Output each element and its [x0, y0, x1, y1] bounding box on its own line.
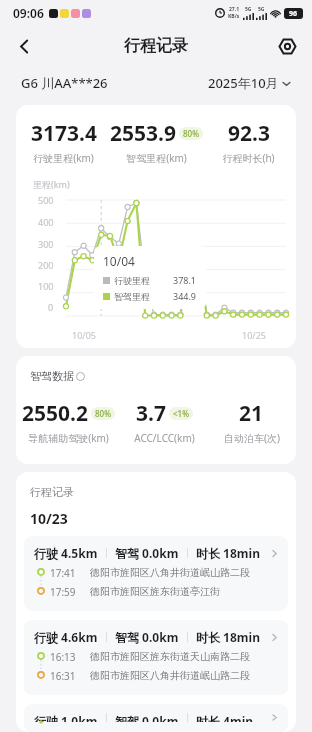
staticText: 16:13 [50, 650, 82, 664]
staticText: 行驶 1.0km [34, 713, 98, 722]
button[interactable]: Back [7, 29, 41, 63]
staticText: 智驾数据 [30, 369, 74, 383]
button[interactable]: 2025年10月 [208, 74, 291, 92]
staticText: 2550.2 [22, 399, 88, 428]
staticText: 智驾 0.0km [115, 545, 179, 561]
staticText: 80% [183, 128, 199, 139]
staticText: 3.7 [136, 399, 166, 428]
staticText: 378.1 [173, 274, 197, 286]
staticText: KB/s [228, 13, 240, 20]
staticText: 行驶里程(km) [33, 151, 94, 165]
button[interactable]: 行驶 4.5km [24, 536, 288, 611]
staticText: 10/23 [30, 509, 68, 528]
staticText: 92.3 [228, 119, 270, 148]
button[interactable]: G6 川AA***26 [21, 74, 108, 92]
staticText: 27.1 [229, 6, 239, 13]
staticText: 德阳市旌阳区八角井街道岷山路二段 [90, 566, 250, 579]
button[interactable]: 行驶 4.6km [24, 620, 288, 695]
staticText: 时长 18min [196, 629, 260, 645]
staticText: 行驶 4.5km [34, 545, 98, 561]
staticText: 行驶 4.6km [34, 629, 98, 645]
staticText: 行驶里程 [114, 275, 150, 286]
staticText: <1% [173, 408, 189, 419]
staticText: 2025年10月 [208, 74, 279, 92]
staticText: 德阳市旌阳区旌东街道亭江街 [90, 585, 220, 598]
staticText: 10/04 [103, 253, 135, 269]
staticText: 344.9 [173, 290, 197, 302]
staticText: 智驾里程(km) [126, 151, 187, 165]
staticText: 500 [38, 194, 54, 206]
staticText: 智驾里程 [114, 291, 150, 302]
staticText: 自动泊车(次) [224, 431, 280, 445]
staticText: 智驾 0.0km [115, 713, 179, 722]
staticText: 5G [245, 6, 252, 13]
staticText: 行程时长(h) [222, 151, 275, 165]
staticText: 16:31 [50, 669, 82, 683]
staticText: ACC/LCC(km) [134, 431, 195, 445]
staticText: 100 [38, 280, 54, 292]
staticText: 智驾 0.0km [115, 629, 179, 645]
button[interactable]: 行驶 1.0km [24, 704, 288, 732]
staticText: 10/25 [242, 329, 266, 341]
staticText: 96 [289, 9, 298, 19]
staticText: 2553.9 [110, 119, 176, 148]
staticText: 80% [95, 408, 111, 419]
staticText: 300 [38, 238, 54, 250]
staticText: 400 [38, 216, 54, 228]
button[interactable]: 智驾数据 [30, 369, 85, 383]
staticText: 德阳市旌阳区八角井街道岷山路二段 [90, 669, 250, 682]
staticText: 10/05 [72, 329, 96, 341]
staticText: 09:06 [13, 5, 44, 21]
staticText: 时长 18min [196, 545, 260, 561]
staticText: 行程记录 [124, 36, 188, 56]
button[interactable]: Settings [270, 29, 304, 63]
staticText: 3173.4 [31, 119, 97, 148]
staticText: 里程(km) [33, 178, 70, 190]
staticText: 17:59 [50, 585, 82, 599]
staticText: 200 [38, 259, 54, 271]
staticText: 17:41 [50, 566, 82, 580]
staticText: 导航辅助驾驶(km) [28, 431, 109, 445]
staticText: 0 [48, 301, 54, 313]
staticText: 时长 4min [196, 713, 254, 722]
staticText: 行程记录 [30, 485, 74, 499]
staticText: 德阳市旌阳区旌东街道天山南路二段 [90, 650, 250, 663]
staticText: 21 [239, 399, 264, 428]
staticText: 5G [258, 6, 265, 13]
